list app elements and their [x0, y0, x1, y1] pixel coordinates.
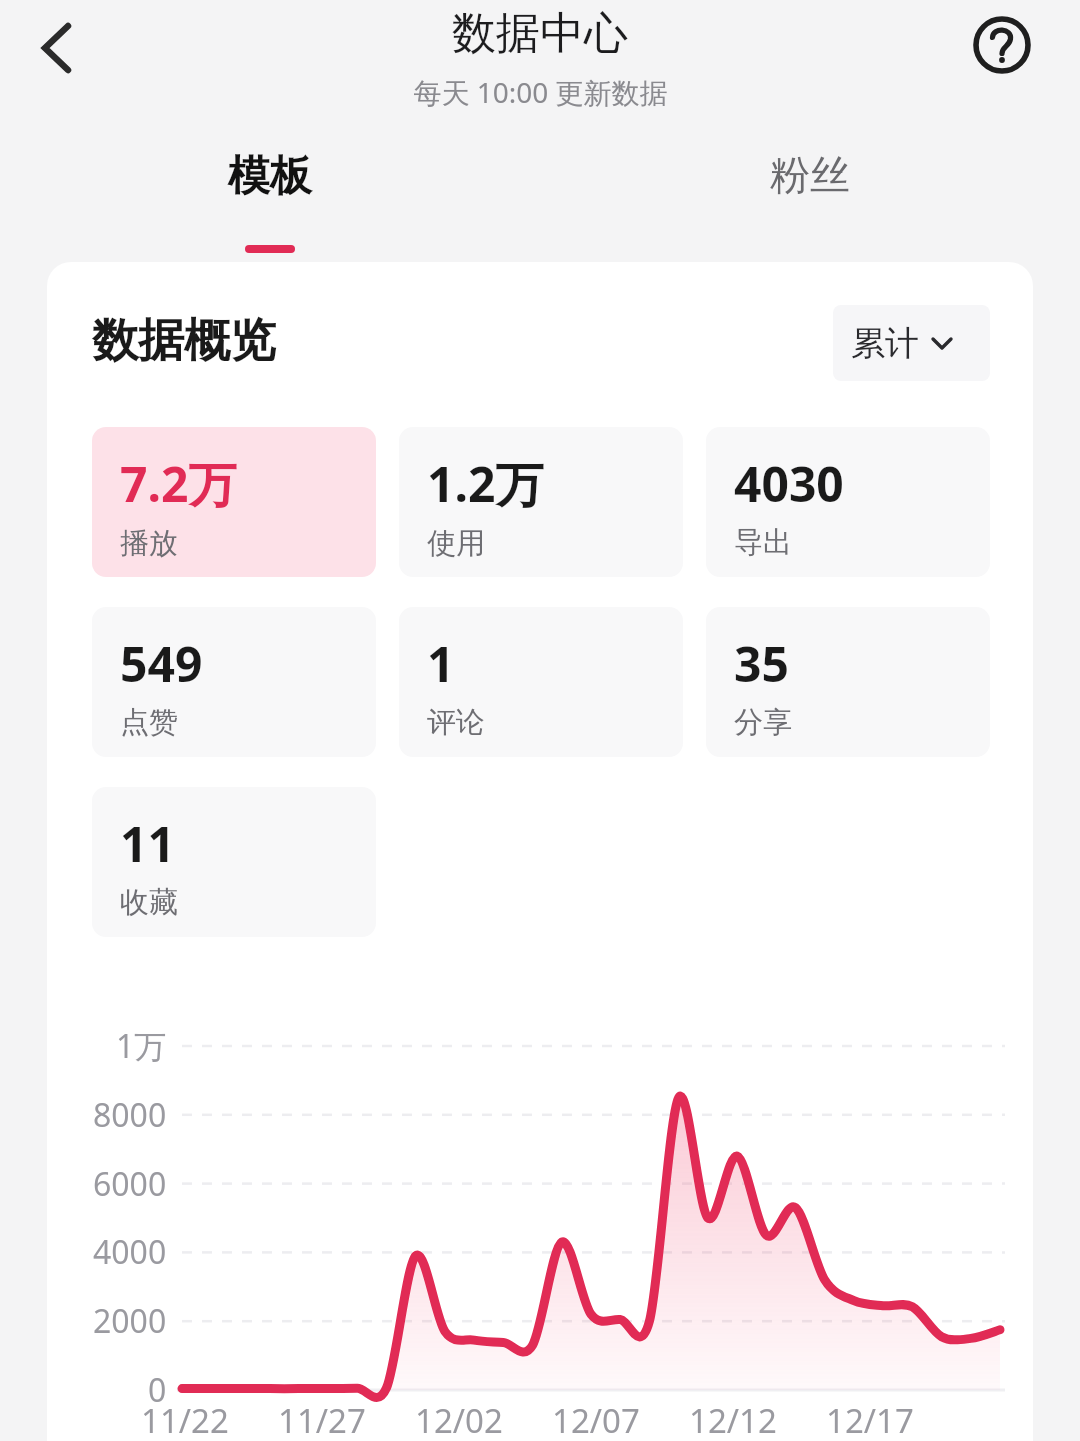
button[interactable]: 1.2万 — [399, 427, 683, 577]
staticText: 数据概览 — [92, 312, 276, 370]
button[interactable]: 549 — [92, 607, 376, 757]
staticText: 12/12 — [689, 1398, 777, 1441]
button[interactable]: Back — [12, 0, 104, 92]
button[interactable]: Help — [956, 0, 1048, 92]
staticText: 粉丝 — [770, 150, 850, 200]
staticText: 35 — [734, 631, 789, 696]
staticText: 12/17 — [826, 1398, 914, 1441]
staticText: 549 — [120, 631, 203, 696]
button[interactable]: 11 — [92, 787, 376, 937]
staticText: 点赞 — [120, 704, 178, 741]
staticText: 1 — [427, 631, 455, 696]
staticText: 评论 — [427, 704, 485, 741]
staticText: 分享 — [734, 704, 792, 741]
staticText: 导出 — [734, 524, 792, 561]
button[interactable]: 4030 — [706, 427, 990, 577]
staticText: 2000 — [93, 1299, 167, 1343]
button[interactable]: 粉丝 — [690, 150, 930, 262]
button[interactable]: 模板 — [150, 150, 390, 262]
staticText: 1.2万 — [427, 451, 544, 517]
staticText: 数据中心 — [452, 6, 628, 61]
staticText: 收藏 — [120, 884, 178, 921]
staticText: 累计 — [851, 322, 919, 365]
staticText: 6000 — [93, 1162, 167, 1206]
staticText: 12/02 — [415, 1398, 503, 1441]
staticText: 播放 — [120, 525, 178, 562]
button[interactable]: 累计 — [833, 305, 990, 381]
button[interactable]: 7.2万 — [92, 427, 376, 577]
staticText: 使用 — [427, 525, 485, 562]
staticText: 11 — [120, 811, 175, 876]
staticText: 每天 10:00 更新数据 — [413, 73, 668, 111]
button[interactable]: 1 — [399, 607, 683, 757]
staticText: 8000 — [93, 1093, 167, 1137]
staticText: 12/07 — [552, 1398, 640, 1441]
staticText: 11/27 — [278, 1398, 366, 1441]
staticText: 7.2万 — [120, 451, 237, 517]
staticText: 11/22 — [141, 1398, 229, 1441]
staticText: 1万 — [116, 1024, 167, 1068]
staticText: 4000 — [93, 1230, 167, 1274]
staticText: 4030 — [734, 451, 844, 516]
button[interactable]: 35 — [706, 607, 990, 757]
staticText: 模板 — [228, 150, 312, 203]
staticText: 0 — [148, 1368, 167, 1412]
